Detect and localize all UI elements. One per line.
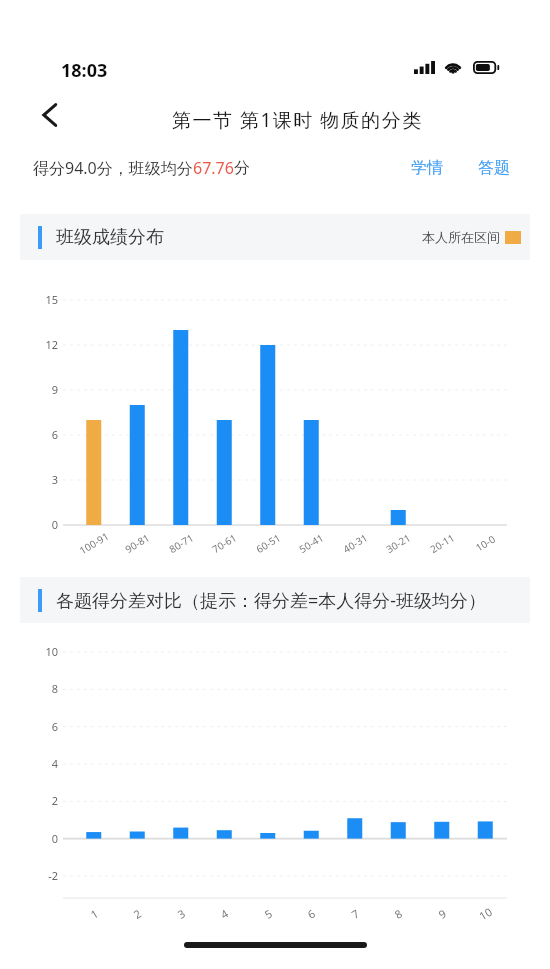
staticText: 班级成绩分布: [56, 226, 164, 249]
staticText: 100-91: [77, 529, 111, 557]
staticText: 80-71: [166, 530, 197, 556]
staticText: 6: [305, 905, 318, 922]
staticText: 3: [175, 905, 188, 922]
staticText: 30-21: [383, 530, 414, 556]
staticText: 得分94.0分，班级均分: [33, 157, 193, 179]
staticText: -2: [30, 868, 58, 883]
staticText: 40-31: [340, 530, 371, 556]
staticText: 10: [476, 904, 495, 923]
staticText: 0: [34, 517, 58, 532]
staticText: 各题得分差对比（提示：得分差=本人得分-班级均分）: [56, 588, 487, 613]
staticText: 3: [34, 472, 58, 487]
staticText: 2: [131, 905, 144, 922]
staticText: 12: [34, 337, 58, 352]
staticText: 分: [234, 158, 250, 178]
staticText: 50-41: [296, 530, 327, 556]
staticText: 4: [30, 756, 58, 771]
staticText: 1: [88, 905, 101, 922]
staticText: 学情: [411, 158, 443, 178]
staticText: 8: [30, 681, 58, 696]
staticText: 8: [392, 905, 405, 922]
staticText: 本人所在区间: [422, 229, 500, 245]
staticText: 90-81: [122, 530, 153, 556]
button[interactable]: 学情: [411, 158, 443, 178]
button[interactable]: 答题: [478, 158, 510, 178]
staticText: 2: [30, 793, 58, 808]
staticText: 答题: [478, 158, 510, 178]
staticText: 10-0: [473, 532, 498, 554]
staticText: 18:03: [61, 58, 108, 83]
staticText: 9: [436, 905, 449, 922]
staticText: 6: [34, 427, 58, 442]
staticText: 9: [34, 382, 58, 397]
staticText: 4: [218, 905, 231, 922]
staticText: 第一节 第1课时 物质的分类: [172, 107, 423, 133]
button[interactable]: Back: [27, 90, 73, 140]
staticText: 5: [262, 905, 275, 922]
staticText: 60-51: [253, 530, 284, 556]
staticText: 7: [349, 905, 362, 922]
staticText: 0: [30, 831, 58, 846]
staticText: 67.76: [193, 157, 234, 179]
staticText: 20-11: [427, 530, 458, 556]
staticText: 70-61: [209, 530, 240, 556]
staticText: 15: [34, 292, 58, 307]
staticText: 6: [30, 719, 58, 734]
staticText: 10: [30, 644, 58, 659]
